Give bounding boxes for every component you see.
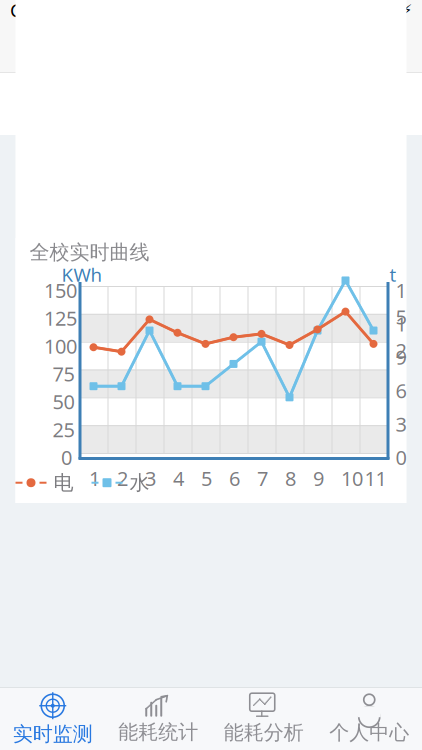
staticText: 0 — [61, 444, 72, 471]
button[interactable]: 实时监测 — [0, 688, 105, 750]
staticText: 150 — [44, 277, 77, 304]
button[interactable]: 个人中心 — [316, 688, 422, 750]
staticText: 9 — [395, 344, 406, 370]
staticText: 6 — [395, 377, 406, 404]
staticText: 6 — [229, 465, 240, 492]
staticText: 人均电耗:2.95KWh/人.年 人均水耗:0.02t/人.年 — [30, 224, 360, 281]
button[interactable]: 能耗统计 — [105, 688, 211, 750]
staticText: 3 — [145, 465, 156, 492]
staticText: 5 — [201, 465, 212, 492]
staticText: 12 — [395, 310, 406, 363]
staticText: 3 — [395, 411, 406, 437]
staticText: 能耗分析 — [224, 720, 304, 745]
staticText: 水 — [129, 470, 149, 495]
staticText: 50 — [52, 388, 74, 415]
staticText: 100 — [44, 333, 77, 359]
staticText: 75 — [52, 360, 74, 387]
staticText: 25 — [52, 416, 74, 443]
staticText: 电 — [53, 470, 73, 495]
staticText: 2 — [117, 465, 128, 492]
staticText: 125 — [44, 305, 77, 331]
staticText: 8 — [285, 465, 296, 492]
staticText: 10 — [341, 465, 363, 492]
staticText: ⚡︎ — [402, 2, 412, 18]
staticText: 7 — [257, 465, 268, 492]
staticText: 0 — [395, 444, 406, 471]
staticText: KWh — [61, 262, 102, 287]
staticText: 15 — [395, 277, 406, 330]
staticText: 个人中心 — [329, 720, 409, 745]
staticText: Carrier — [10, 0, 72, 22]
staticText: 9 — [313, 465, 324, 492]
staticText: 11 — [364, 465, 386, 492]
staticText: 4 — [173, 465, 184, 492]
button[interactable]: 能耗分析 — [211, 688, 316, 750]
staticText: 能耗统计 — [118, 720, 198, 744]
staticText: 全校实时曲线 — [29, 240, 149, 265]
staticText: 实时监测 — [13, 722, 93, 746]
staticText: 1 — [89, 465, 100, 492]
staticText: t — [389, 262, 396, 287]
